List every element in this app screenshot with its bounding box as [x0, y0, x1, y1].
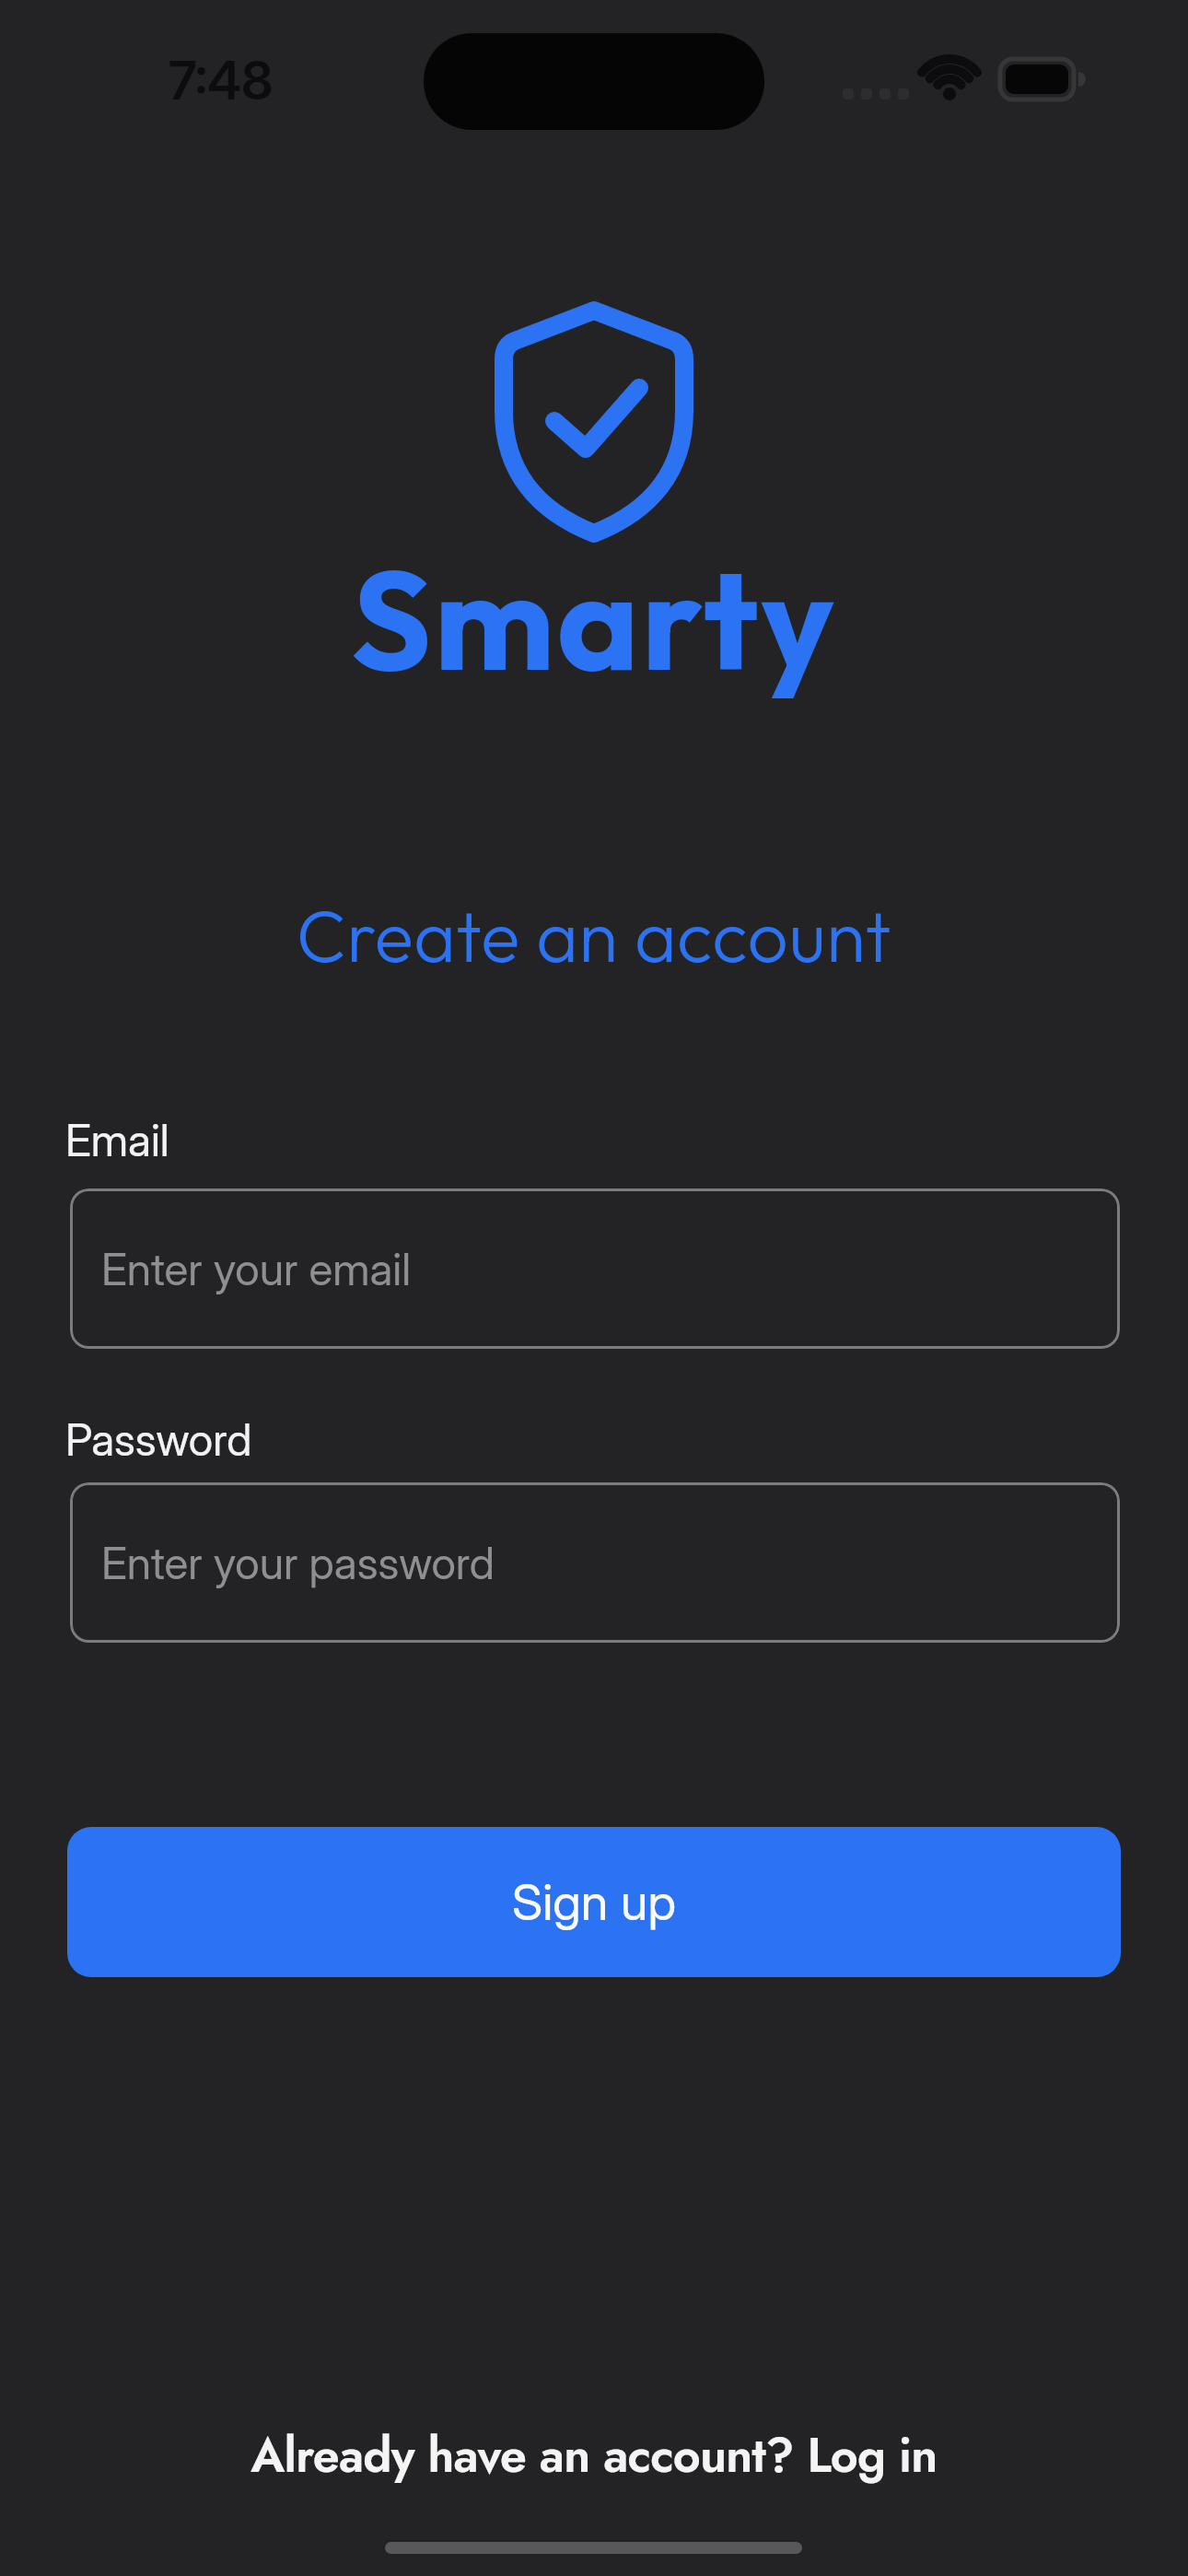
button[interactable]: Already have an account? Log in	[0, 2420, 1188, 2489]
staticText: Smarty	[0, 532, 1188, 706]
staticText: Create an account	[0, 890, 1188, 980]
button[interactable]: Enter your password	[70, 1482, 1120, 1643]
button[interactable]: Enter your email	[70, 1188, 1120, 1349]
staticText: 7:48	[169, 49, 274, 112]
staticText: Email	[65, 1113, 169, 1166]
staticText: Password	[65, 1412, 252, 1466]
staticText: Enter your email	[101, 1242, 412, 1295]
staticText: Enter your password	[101, 1536, 495, 1589]
staticText: Sign up	[512, 1872, 676, 1932]
button[interactable]: Sign up	[67, 1827, 1121, 1977]
